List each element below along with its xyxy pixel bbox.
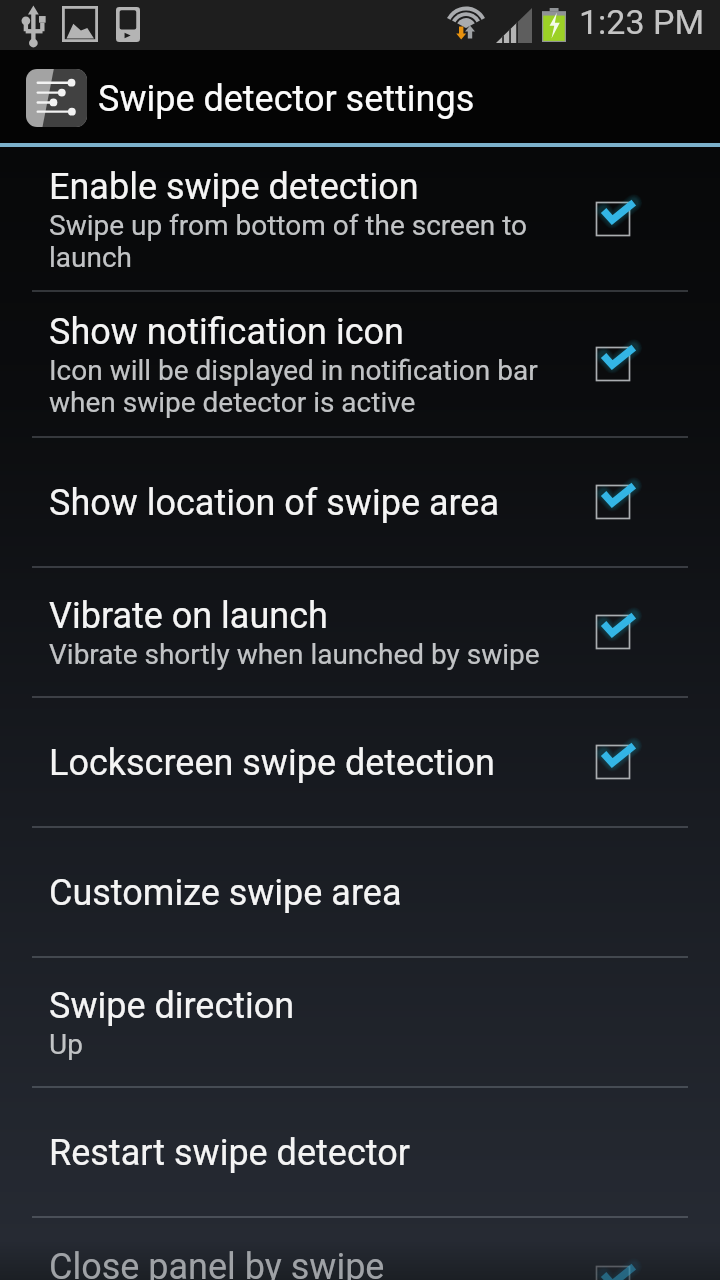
- staticText: Icon will be displayed in notification b…: [49, 354, 562, 419]
- staticText: Swipe up from bottom of the screen to la…: [49, 209, 562, 274]
- staticText: Enable swipe detection: [49, 160, 419, 209]
- staticText: Show location of swipe area: [49, 476, 500, 525]
- button[interactable]: Restart swipe detector: [0, 1088, 720, 1216]
- staticText: Swipe detector settings: [98, 78, 475, 120]
- button[interactable]: Show notification icon: [0, 292, 720, 436]
- button[interactable]: Swipe direction: [0, 958, 720, 1086]
- button[interactable]: Toggle setting: [581, 730, 645, 794]
- staticText: Customize swipe area: [49, 866, 402, 915]
- staticText: Close panel by swipe: [49, 1240, 385, 1280]
- button[interactable]: Customize swipe area: [0, 828, 720, 956]
- button[interactable]: Toggle setting: [581, 332, 645, 396]
- staticText: Lockscreen swipe detection: [49, 736, 495, 785]
- staticText: Vibrate shortly when launched by swipe: [49, 638, 540, 671]
- staticText: Up: [49, 1028, 83, 1061]
- staticText: Restart swipe detector: [49, 1126, 410, 1175]
- staticText: Vibrate on launch: [49, 589, 328, 638]
- button[interactable]: Enable swipe detection: [0, 147, 720, 290]
- button[interactable]: Close panel by swipe: [0, 1218, 720, 1280]
- button[interactable]: Show location of swipe area: [0, 438, 720, 566]
- staticText: Swipe direction: [49, 979, 295, 1028]
- staticText: 1:23 PM: [579, 2, 705, 42]
- button[interactable]: Toggle setting: [581, 187, 645, 251]
- button[interactable]: Toggle setting: [581, 600, 645, 664]
- button[interactable]: Toggle setting: [581, 470, 645, 534]
- button[interactable]: Lockscreen swipe detection: [0, 698, 720, 826]
- staticText: Show notification icon: [49, 305, 404, 354]
- button[interactable]: Vibrate on launch: [0, 568, 720, 696]
- button[interactable]: App icon, navigate up: [26, 69, 87, 127]
- button[interactable]: Toggle setting: [581, 1251, 645, 1280]
